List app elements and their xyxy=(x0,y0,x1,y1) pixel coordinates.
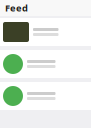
staticText: Feed xyxy=(5,2,28,14)
